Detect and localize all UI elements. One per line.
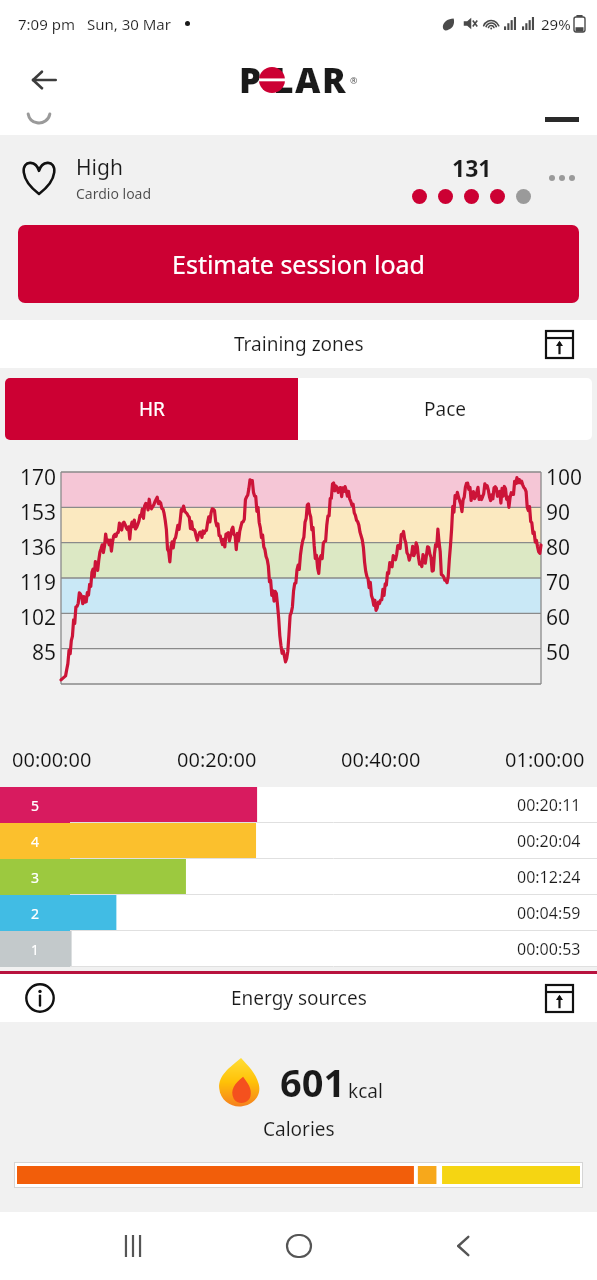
staticText: 00:00:00 (12, 746, 92, 773)
staticText: 00:20:11 (517, 794, 581, 816)
staticText: 100 (546, 463, 583, 492)
staticText: 601 (280, 1056, 346, 1108)
staticText: 00:20:00 (177, 746, 257, 773)
staticText: 119 (20, 568, 57, 597)
button[interactable]: 4 (0, 823, 597, 859)
staticText: 29% (541, 14, 571, 34)
button[interactable]: Info (0, 974, 597, 1022)
button[interactable]: Training zones (0, 320, 597, 368)
button[interactable]: 2 (0, 895, 597, 931)
button[interactable]: More options (545, 158, 579, 198)
staticText: 102 (20, 603, 57, 632)
button[interactable]: Back (20, 56, 68, 104)
staticText: 5 (31, 796, 40, 815)
button[interactable]: 5 (0, 787, 597, 823)
staticText: 153 (20, 498, 57, 527)
staticText: 131 (452, 152, 492, 183)
staticText: 1 (31, 940, 40, 959)
staticText: 60 (546, 603, 571, 632)
button[interactable]: Back (432, 1214, 496, 1278)
staticText: Sun, 30 Mar (87, 14, 171, 34)
staticText: kcal (348, 1078, 383, 1104)
staticText: 00:20:04 (517, 830, 581, 852)
staticText: 7:09 pm (18, 14, 75, 34)
staticText: Estimate session load (172, 247, 425, 281)
staticText: 00:00:53 (517, 938, 581, 960)
staticText: 50 (546, 638, 571, 667)
button[interactable]: 3 (0, 859, 597, 895)
button[interactable]: Collapse section (537, 322, 581, 366)
staticText: 01:00:00 (505, 746, 585, 773)
staticText: 136 (20, 533, 57, 562)
staticText: 00:12:24 (517, 866, 581, 888)
staticText: Calories (263, 1116, 335, 1142)
staticText: Training zones (234, 331, 364, 357)
staticText: 00:40:00 (341, 746, 421, 773)
button[interactable] (14, 1162, 583, 1188)
staticText: 80 (546, 533, 571, 562)
button[interactable]: High (0, 135, 597, 220)
button[interactable]: Collapse section (537, 976, 581, 1020)
button[interactable]: Info (20, 978, 60, 1018)
button[interactable]: Pace (298, 378, 592, 440)
button[interactable]: HR (5, 378, 298, 440)
staticText: 4 (31, 832, 40, 851)
staticText: ® (350, 74, 358, 86)
staticText: HR (139, 396, 165, 422)
staticText: 3 (31, 868, 40, 887)
button[interactable]: Recent apps (101, 1214, 165, 1278)
staticText: 70 (546, 568, 571, 597)
staticText: 170 (20, 463, 57, 492)
staticText: Pace (424, 396, 466, 422)
staticText: P LAR (239, 56, 348, 104)
button[interactable]: 1 (0, 931, 597, 967)
staticText: Cardio load (76, 184, 152, 203)
button[interactable]: Home (267, 1214, 331, 1278)
staticText: Energy sources (231, 985, 367, 1011)
button[interactable]: Estimate session load (18, 225, 579, 303)
staticText: 90 (546, 498, 571, 527)
staticText: High (76, 153, 123, 182)
staticText: 2 (31, 904, 40, 923)
staticText: 85 (32, 638, 57, 667)
staticText: 00:04:59 (517, 902, 581, 924)
